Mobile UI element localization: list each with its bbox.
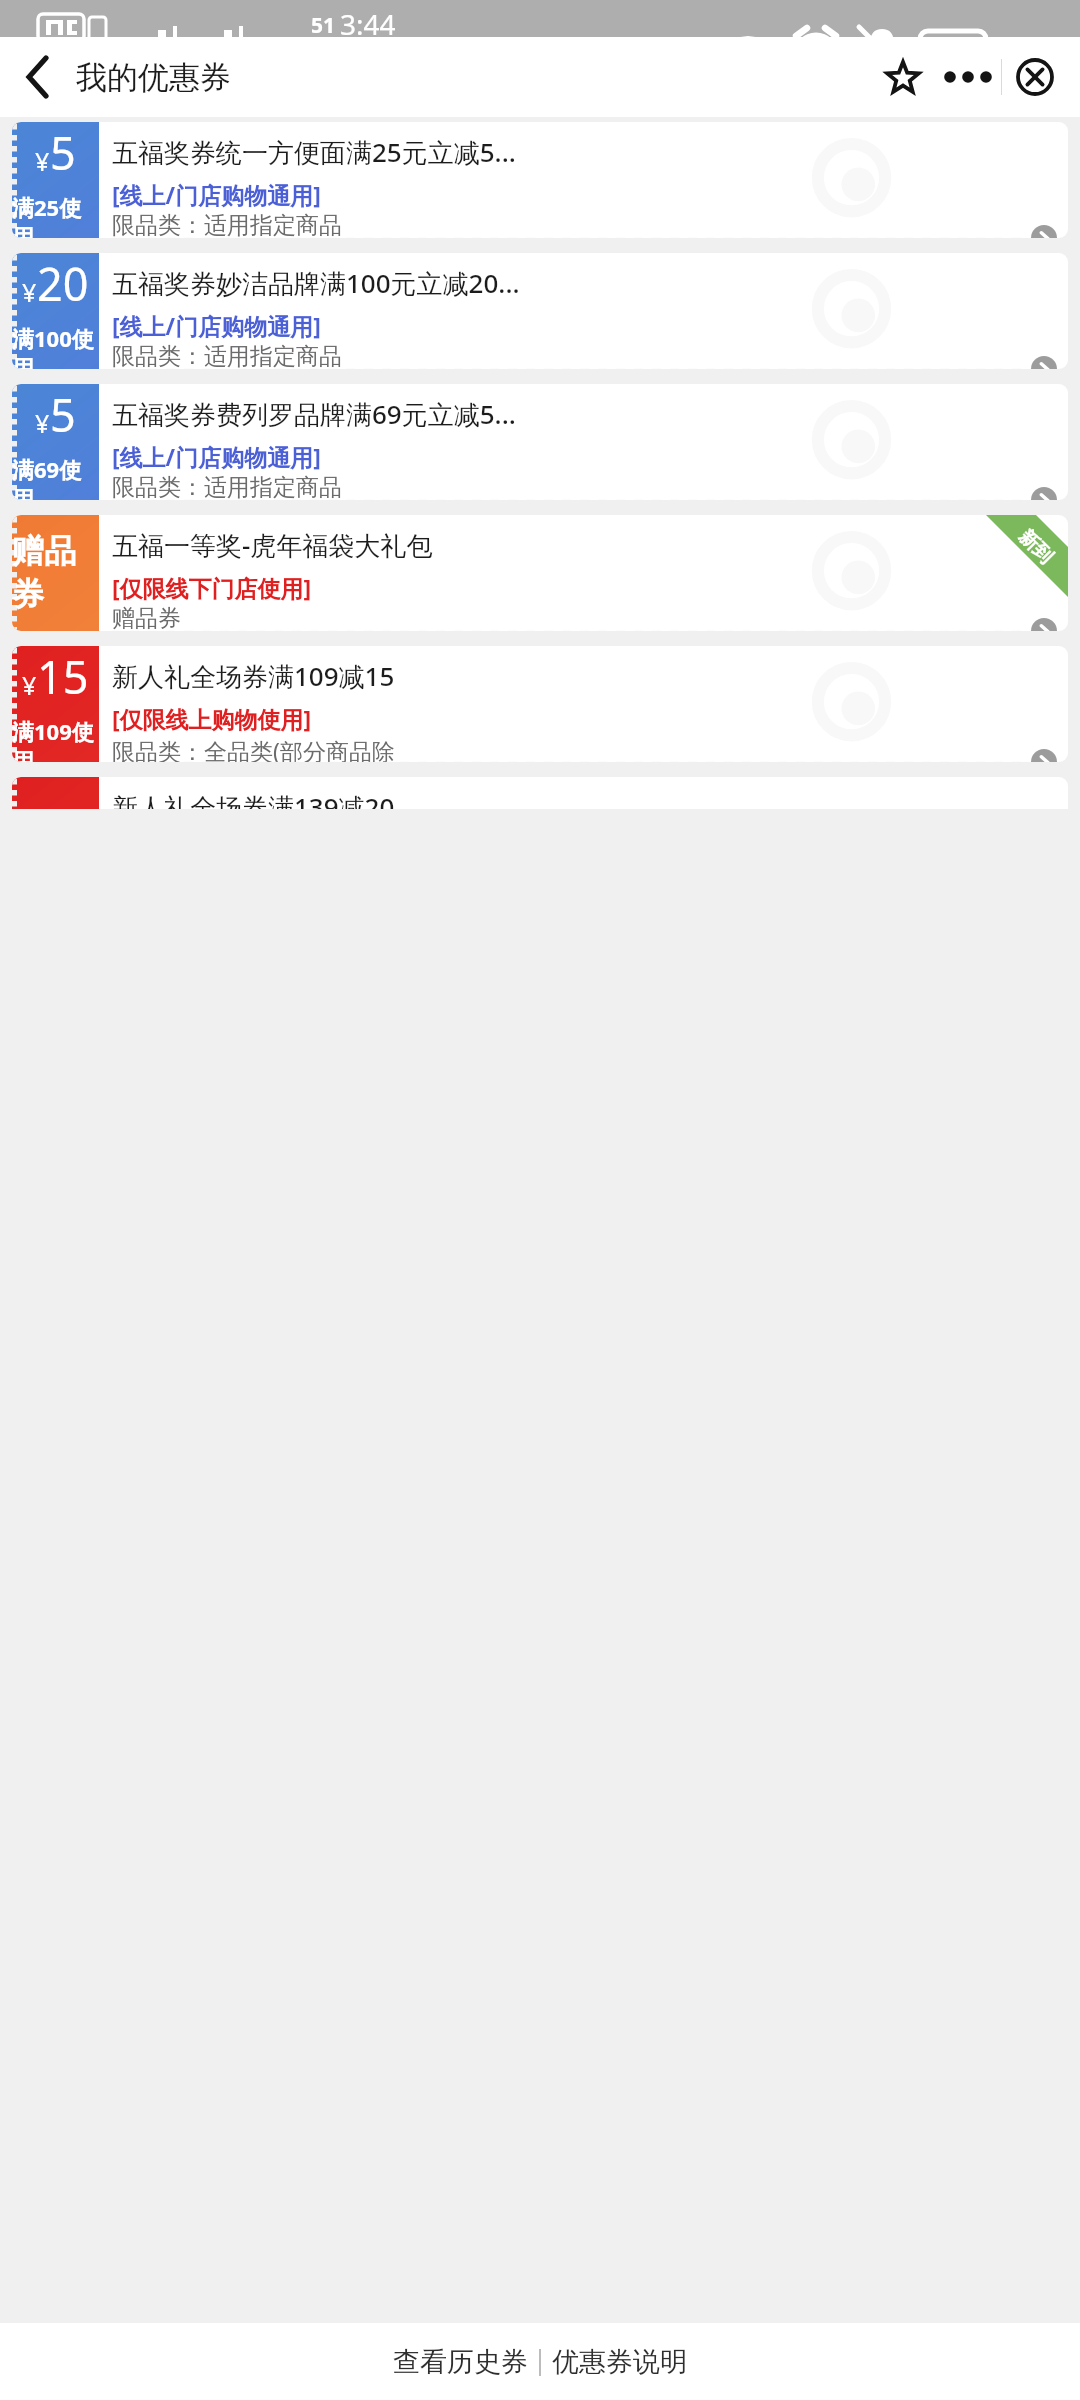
staticText: 五福奖券费列罗品牌满69元立减5... (112, 396, 516, 432)
staticText: ¥ (22, 275, 37, 309)
staticText: 赠品券 (112, 604, 181, 631)
staticText: [仅限线上购物使用] (112, 703, 312, 734)
staticText: [线上/门店购物通用] (112, 441, 321, 472)
staticText: 限品类：适用指定商品 (112, 342, 342, 369)
staticText: 新人礼全场券满139减20 (112, 789, 395, 809)
staticText: 5 (50, 122, 76, 183)
staticText: 优惠券说明 (552, 2345, 687, 2379)
staticText: 限品类：适用指定商品 (112, 473, 342, 500)
staticText: 赠品券 (12, 531, 99, 615)
button[interactable]: ¥ (12, 253, 1068, 369)
button[interactable]: 查看历史券 (382, 2336, 539, 2388)
button[interactable]: ¥ (12, 646, 1068, 762)
staticText: 五福奖券统一方便面满25元立减5... (112, 134, 516, 170)
button[interactable]: Back (10, 50, 64, 104)
staticText: 满109使用 (12, 716, 99, 762)
staticText: [线上/门店购物通用] (112, 179, 321, 210)
button[interactable]: 赠品券 (12, 515, 1068, 631)
staticText: ¥ (35, 144, 50, 178)
staticText: ¥ (35, 406, 50, 440)
staticText: 20 (37, 253, 89, 314)
staticText: 新人礼全场券满109减15 (112, 658, 395, 694)
staticText: 5 (50, 384, 76, 445)
staticText: 满69使用 (12, 454, 99, 500)
button[interactable]: Favorite (875, 45, 931, 109)
staticText: 限品类：全品类(部分商品除 外) (112, 735, 395, 762)
staticText: 五福奖券妙洁品牌满100元立减20... (112, 265, 520, 301)
staticText: 15 (37, 646, 89, 707)
staticText: [线上/门店购物通用] (112, 310, 321, 341)
staticText: ¥ (22, 668, 37, 702)
button[interactable]: Close (1002, 45, 1068, 109)
staticText: 五福一等奖-虎年福袋大礼包 (112, 527, 433, 563)
button[interactable]: 优惠券说明 (541, 2336, 698, 2388)
staticText: 51 (311, 11, 336, 40)
staticText: 满100使用 (12, 323, 99, 369)
staticText: 我的优惠券 (76, 58, 231, 97)
button[interactable]: 新人礼全场券满139减20 (12, 777, 1068, 809)
staticText: 新到 (1014, 525, 1058, 569)
staticText: 满25使用 (12, 192, 99, 238)
staticText: 3:44 (340, 5, 396, 42)
button[interactable]: ¥ (12, 122, 1068, 238)
staticText: 限品类：适用指定商品 (112, 211, 342, 238)
button[interactable]: More options (935, 45, 1001, 109)
button[interactable]: ¥ (12, 384, 1068, 500)
staticText: 查看历史券 (393, 2345, 528, 2379)
staticText: [仅限线下门店使用] (112, 572, 312, 603)
